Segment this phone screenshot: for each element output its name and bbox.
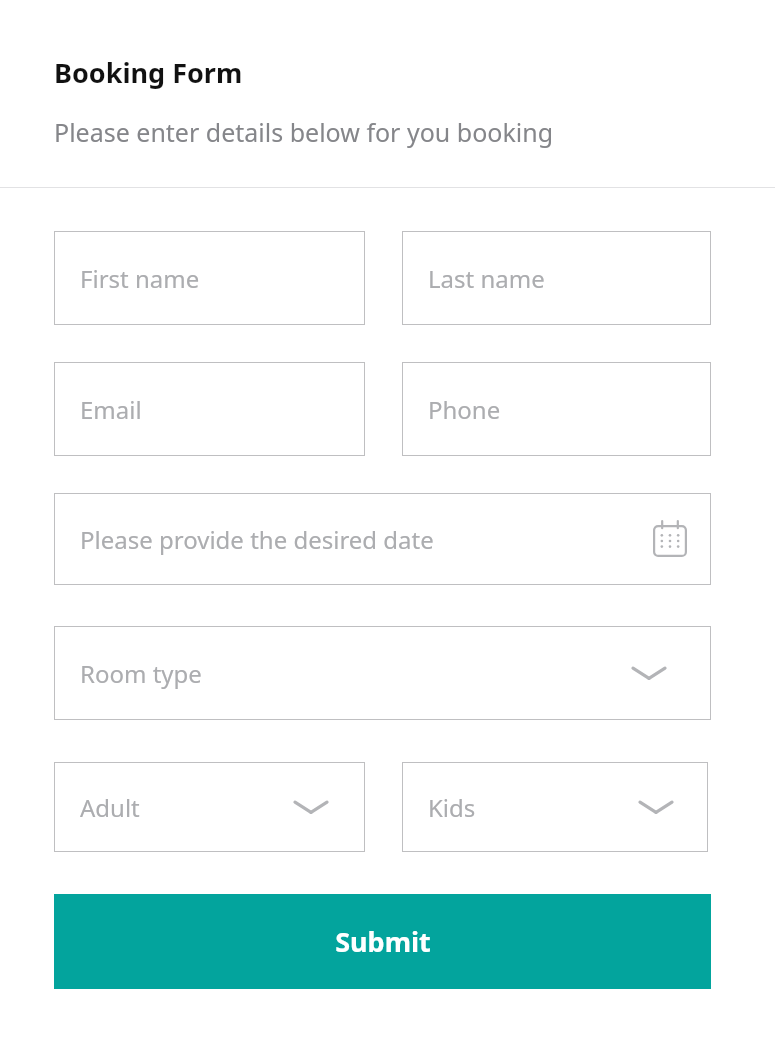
staticText: Please provide the desired date: [80, 523, 434, 556]
staticText: Last name: [428, 262, 545, 295]
button[interactable]: First name: [54, 231, 365, 325]
staticText: Phone: [428, 393, 501, 426]
staticText: Booking Form: [54, 54, 243, 91]
button[interactable]: Last name: [402, 231, 711, 325]
other: Pick a date: [653, 521, 687, 557]
staticText: Please enter details below for you booki…: [54, 115, 554, 149]
button[interactable]: Please provide the desired date: [54, 493, 711, 585]
button[interactable]: Kids: [402, 762, 708, 852]
button[interactable]: Submit: [54, 894, 711, 989]
staticText: Email: [80, 393, 142, 426]
other: Expand dropdown: [629, 661, 669, 685]
staticText: Adult: [80, 791, 140, 824]
button[interactable]: Adult: [54, 762, 365, 852]
staticText: Kids: [428, 791, 476, 824]
other: Expand dropdown: [636, 795, 676, 819]
staticText: First name: [80, 262, 200, 295]
button[interactable]: Email: [54, 362, 365, 456]
staticText: Submit: [335, 923, 431, 960]
staticText: Room type: [80, 657, 202, 690]
button[interactable]: Phone: [402, 362, 711, 456]
other: Expand dropdown: [291, 795, 331, 819]
button[interactable]: Room type: [54, 626, 711, 720]
